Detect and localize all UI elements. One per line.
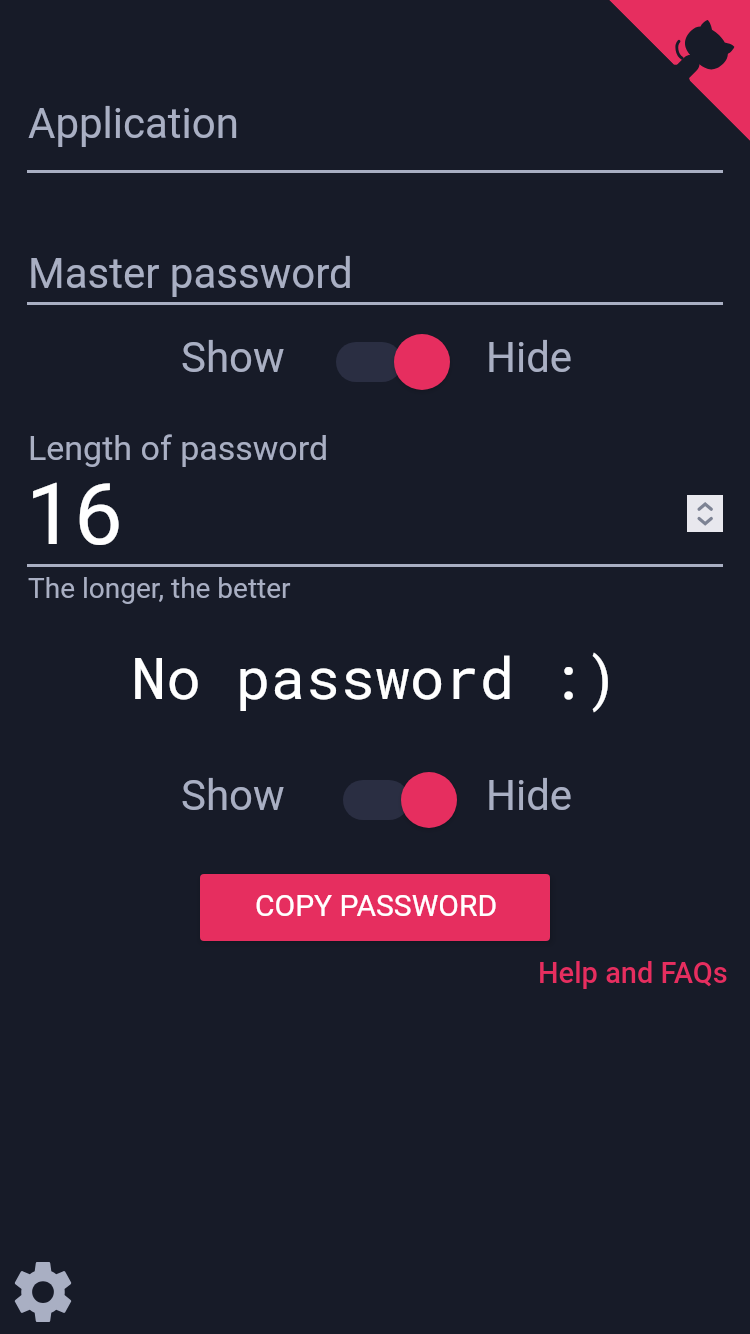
staticText: The longer, the better — [28, 572, 291, 605]
button[interactable]: Change length — [687, 495, 723, 532]
button[interactable]: Fork me on GitHub — [609, 0, 750, 141]
button[interactable]: COPY PASSWORD — [200, 874, 550, 941]
button[interactable]: Length of password — [27, 420, 667, 567]
staticText: Length of password — [28, 428, 329, 468]
button[interactable]: Toggle password visibility — [337, 768, 457, 828]
staticText: No password :) — [0, 638, 750, 714]
staticText: Master password — [28, 249, 353, 298]
button[interactable]: Toggle password visibility — [330, 330, 450, 390]
button[interactable]: Help and FAQs — [528, 950, 738, 996]
staticText: 16 — [26, 464, 123, 565]
button[interactable]: Master password — [27, 240, 723, 305]
staticText: Hide — [486, 333, 573, 382]
staticText: Show — [181, 771, 285, 820]
staticText: Show — [181, 333, 285, 382]
button[interactable]: Application — [27, 90, 723, 173]
button[interactable]: Settings — [14, 1262, 72, 1322]
staticText: Hide — [486, 771, 573, 820]
staticText: Application — [28, 99, 239, 148]
staticText: COPY PASSWORD — [255, 888, 498, 923]
staticText: Help and FAQs — [538, 956, 728, 990]
